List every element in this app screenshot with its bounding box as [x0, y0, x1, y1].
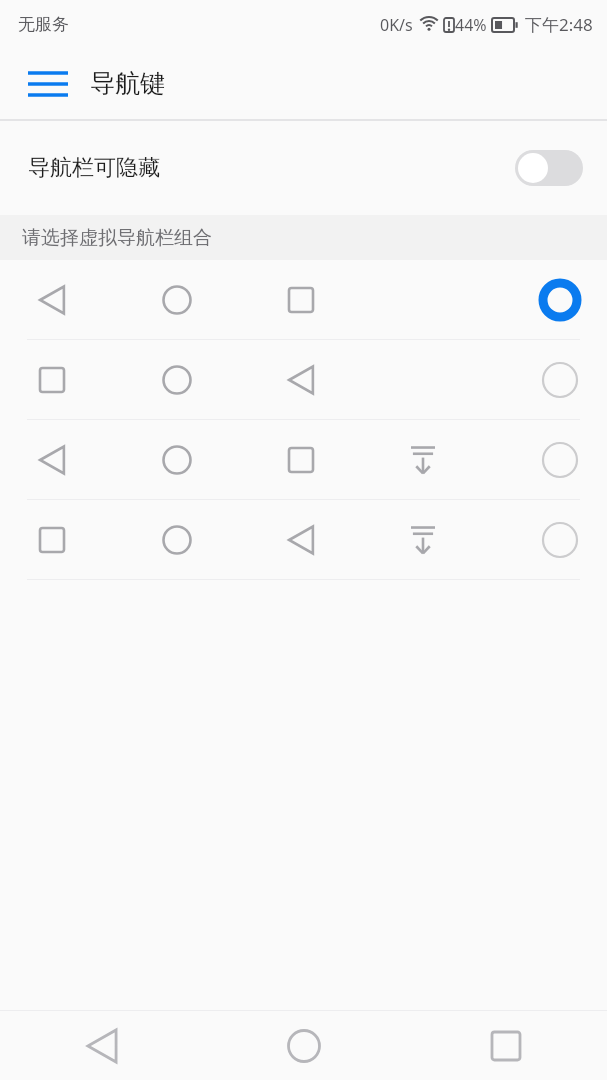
other: Not selected [540, 520, 580, 560]
other: Recents key [281, 440, 321, 480]
other: Home key [157, 360, 197, 400]
button[interactable]: Recents key [0, 340, 607, 420]
staticText: 无服务 [18, 14, 69, 35]
button[interactable]: Recents key [0, 500, 607, 580]
other: Home [284, 1026, 324, 1066]
button[interactable]: Home [276, 1018, 332, 1074]
staticText: 请选择虚拟导航栏组合 [22, 226, 212, 250]
other: Back key [32, 440, 72, 480]
other: Home key [157, 520, 197, 560]
other: Home key [157, 440, 197, 480]
other: Back key [281, 360, 321, 400]
button[interactable]: 导航栏可隐藏 [0, 121, 607, 215]
staticText: 0K/s [380, 14, 413, 36]
other: Not selected [540, 360, 580, 400]
button[interactable]: Menu [0, 48, 607, 119]
other: Back key [281, 520, 321, 560]
other: Hideable navigation bar toggle [515, 150, 583, 186]
other: Recents key [281, 280, 321, 320]
staticText: 导航键 [90, 68, 165, 99]
other: Not selected [540, 440, 580, 480]
button[interactable]: Recents [478, 1018, 534, 1074]
staticText: 下午2:48 [525, 13, 593, 36]
other: Back key [32, 280, 72, 320]
other: Notification panel key [403, 440, 443, 480]
button[interactable]: Back [74, 1018, 130, 1074]
button[interactable]: Back key [0, 420, 607, 500]
other: Menu [28, 64, 68, 104]
other: Notification panel key [403, 520, 443, 560]
other: Recents key [32, 520, 72, 560]
other: Recents [486, 1026, 526, 1066]
other: Selected [540, 280, 580, 320]
other: Back [82, 1026, 122, 1066]
staticText: 44% [455, 14, 487, 36]
button[interactable]: Back key [0, 260, 607, 340]
other: Home key [157, 280, 197, 320]
staticText: 导航栏可隐藏 [28, 154, 160, 182]
other: Recents key [32, 360, 72, 400]
